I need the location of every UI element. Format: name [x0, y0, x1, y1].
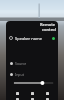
button[interactable]: Input	[6, 70, 58, 78]
button[interactable]: Key 11	[25, 98, 40, 100]
button[interactable]: Source	[6, 59, 58, 67]
staticText: Input	[15, 72, 24, 77]
button[interactable]: Key 00	[9, 88, 25, 98]
button[interactable]: Key 02	[40, 88, 55, 98]
button[interactable]: Speaker name	[6, 33, 58, 43]
button[interactable]: Key 12	[40, 98, 55, 100]
staticText: control	[42, 27, 56, 32]
staticText: Remote	[40, 22, 56, 27]
button[interactable]: Key 10	[9, 98, 25, 100]
staticText: Speaker name	[15, 36, 42, 41]
button[interactable]: Key 01	[25, 88, 40, 98]
staticText: Source	[15, 61, 27, 66]
